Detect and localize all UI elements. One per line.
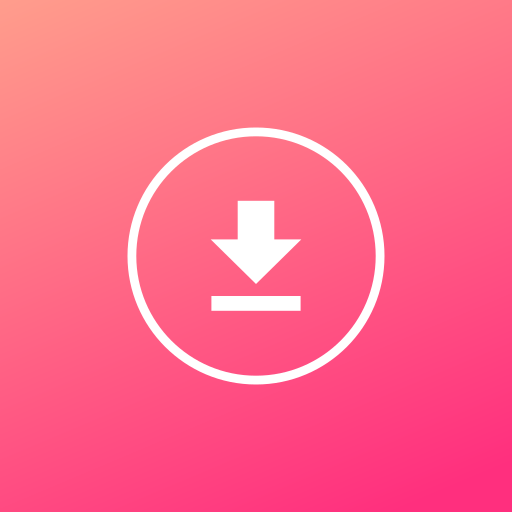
button[interactable]: Download (127, 127, 384, 384)
